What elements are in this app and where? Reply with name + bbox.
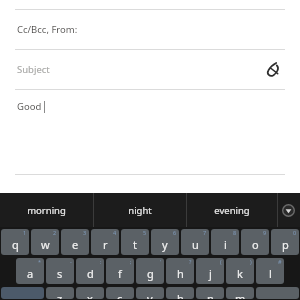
staticText: : <box>100 258 102 265</box>
button[interactable]: 7 <box>181 229 209 255</box>
staticText: Subject <box>17 63 50 76</box>
staticText: morning <box>27 204 66 217</box>
staticText: 3 <box>83 229 87 236</box>
button[interactable]: 8 <box>211 229 239 255</box>
staticText: u <box>192 237 199 252</box>
staticText: Cc/Bcc, From: <box>17 23 78 36</box>
staticText: z <box>57 291 63 299</box>
staticText: k <box>237 266 243 281</box>
staticText: c <box>117 291 123 299</box>
staticText: t <box>133 237 137 252</box>
staticText: y <box>162 237 168 252</box>
staticText: n <box>207 291 214 299</box>
staticText: r <box>103 237 108 252</box>
staticText: ? <box>189 258 192 265</box>
button[interactable]: 4 <box>91 229 119 255</box>
staticText: v <box>147 291 153 299</box>
button[interactable]: Subject <box>0 50 300 89</box>
staticText: ( <box>220 258 222 265</box>
staticText: * <box>38 258 42 265</box>
staticText: ' <box>160 258 162 265</box>
button[interactable]: ' <box>136 258 164 284</box>
button[interactable]: 2 <box>31 229 59 255</box>
staticText: j <box>209 266 212 281</box>
button[interactable]: : <box>76 258 104 284</box>
button[interactable]: ) <box>226 258 254 284</box>
staticText: s <box>57 266 63 281</box>
staticText: 7 <box>203 229 207 236</box>
staticText: h <box>177 266 184 281</box>
button[interactable]: 1 <box>1 229 29 255</box>
staticText: e <box>72 237 79 252</box>
button[interactable]: morning <box>0 193 93 227</box>
staticText: x <box>87 291 93 299</box>
staticText: 2 <box>53 229 57 236</box>
staticText: l <box>269 266 272 281</box>
staticText: f <box>118 266 122 281</box>
button[interactable]: 6 <box>151 229 179 255</box>
button[interactable]: 3 <box>61 229 89 255</box>
staticText: g <box>147 266 154 281</box>
staticText: - <box>70 258 72 265</box>
staticText: night <box>128 204 152 217</box>
staticText: 4 <box>113 229 117 236</box>
button[interactable]: x <box>76 287 104 299</box>
staticText: a <box>27 266 34 281</box>
staticText: 6 <box>173 229 177 236</box>
button[interactable]: 5 <box>121 229 149 255</box>
staticText: 8 <box>233 229 237 236</box>
button[interactable]: More suggestions <box>277 193 300 227</box>
button[interactable]: Attach file <box>262 58 284 80</box>
button[interactable]: evening <box>186 193 277 227</box>
button[interactable]: ? <box>166 258 194 284</box>
staticText: ; <box>130 258 132 265</box>
staticText: evening <box>214 204 250 217</box>
staticText: # <box>278 258 282 265</box>
button[interactable]: - <box>46 258 74 284</box>
button[interactable]: m <box>226 287 254 299</box>
staticText: b <box>177 291 184 299</box>
button[interactable]: Backspace <box>256 287 299 299</box>
button[interactable]: Good <box>0 90 300 173</box>
button[interactable]: v <box>136 287 164 299</box>
staticText: o <box>252 237 259 252</box>
staticText: w <box>41 237 50 252</box>
button[interactable]: c <box>106 287 134 299</box>
button[interactable]: Cc/Bcc, From: <box>0 10 300 49</box>
button[interactable]: Shift <box>1 287 44 299</box>
staticText: 0 <box>293 229 297 236</box>
button[interactable]: ; <box>106 258 134 284</box>
staticText: 5 <box>143 229 147 236</box>
staticText: Good <box>17 100 42 113</box>
button[interactable]: # <box>256 258 284 284</box>
button[interactable]: 9 <box>241 229 269 255</box>
button[interactable]: n <box>196 287 224 299</box>
staticText: 9 <box>263 229 267 236</box>
button[interactable]: * <box>16 258 44 284</box>
staticText: 1 <box>23 229 27 236</box>
button[interactable]: b <box>166 287 194 299</box>
button[interactable]: night <box>93 193 186 227</box>
staticText: i <box>224 237 227 252</box>
button[interactable]: ( <box>196 258 224 284</box>
button[interactable]: 0 <box>271 229 299 255</box>
staticText: m <box>235 291 246 299</box>
button[interactable]: z <box>46 287 74 299</box>
staticText: p <box>282 237 289 252</box>
staticText: ) <box>250 258 252 265</box>
staticText: q <box>12 237 19 252</box>
staticText: d <box>87 266 94 281</box>
